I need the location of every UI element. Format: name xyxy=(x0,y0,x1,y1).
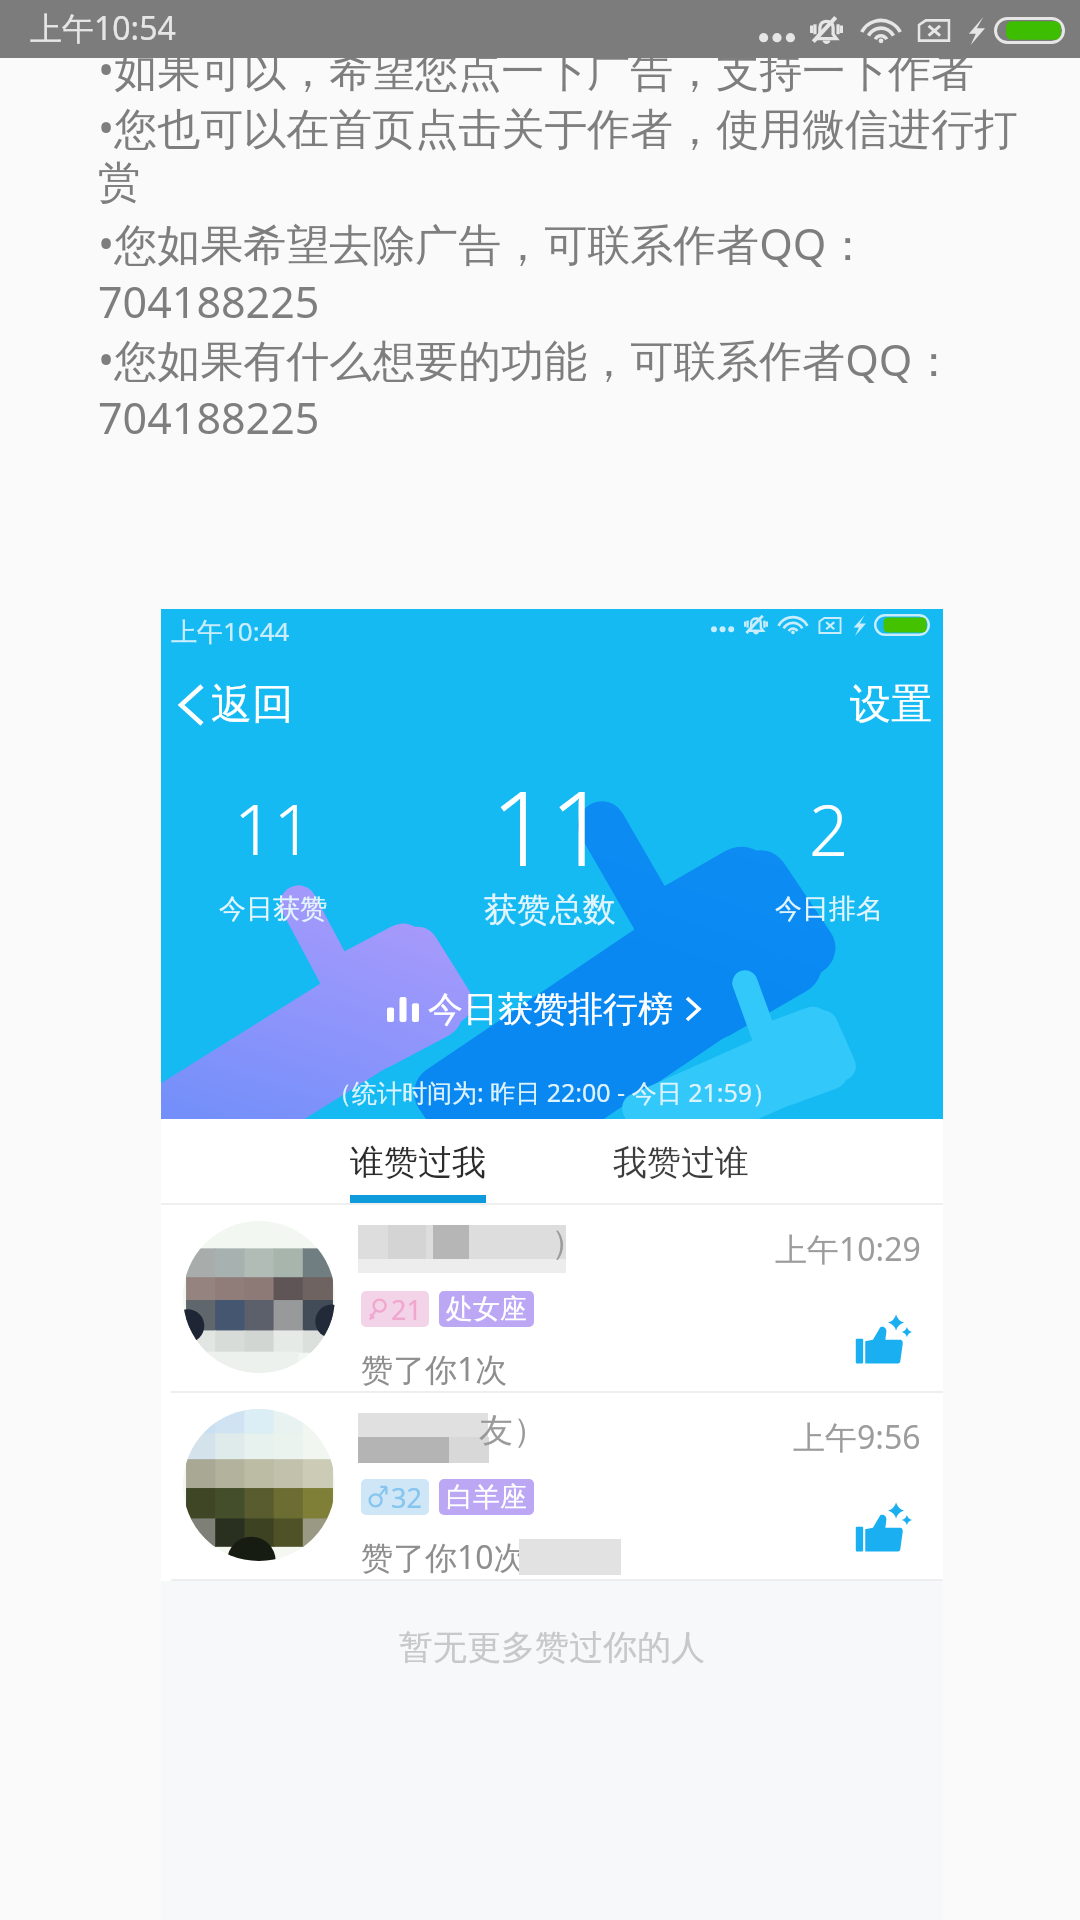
staticText: 上午10:29 xyxy=(775,1227,921,1271)
staticText: 处女座 xyxy=(446,1292,527,1326)
staticText: 2 xyxy=(809,782,849,876)
staticText: 赞了你10次 xyxy=(361,1535,526,1579)
button[interactable]: 今日获赞排行榜 xyxy=(377,979,711,1039)
button[interactable]: Like xyxy=(853,1303,923,1373)
staticText: 32 xyxy=(391,1479,422,1515)
staticText: •如果可以，希望您点一下广告，支持一下作者 xyxy=(98,40,975,99)
staticText: 赞了你1次 xyxy=(361,1347,508,1391)
staticText: 谁赞过我 xyxy=(350,1141,486,1184)
button[interactable]: ） xyxy=(161,1205,943,1393)
staticText: 赏 xyxy=(98,156,141,210)
staticText: 白羊座 xyxy=(446,1480,527,1514)
button[interactable]: 我赞过谁 xyxy=(551,1119,811,1205)
staticText: 上午10:54 xyxy=(30,6,176,50)
staticText: ） xyxy=(551,1221,585,1264)
staticText: （统计时间为: 昨日 22:00 - 今日 21:59） xyxy=(327,1075,778,1109)
staticText: 11 xyxy=(234,781,313,875)
staticText: 设置 xyxy=(850,679,932,731)
button[interactable]: Like xyxy=(853,1491,923,1561)
staticText: 今日排名 xyxy=(775,892,883,926)
staticText: 今日获赞排行榜 xyxy=(428,987,673,1031)
button[interactable]: 谁赞过我 xyxy=(288,1119,548,1205)
staticText: 暂无更多赞过你的人 xyxy=(399,1626,705,1669)
staticText: 友） xyxy=(479,1409,547,1452)
button[interactable]: Back xyxy=(169,671,302,739)
staticText: 我赞过谁 xyxy=(613,1141,749,1184)
button[interactable]: 设置 xyxy=(837,671,943,739)
staticText: 21 xyxy=(391,1291,422,1327)
staticText: 返回 xyxy=(211,679,293,731)
staticText: •您如果有什么想要的功能，可联系作者QQ： xyxy=(98,330,956,389)
staticText: •您也可以在首页点击关于作者，使用微信进行打 xyxy=(98,98,1018,157)
staticText: 704188225 xyxy=(98,388,320,447)
staticText: 今日获赞 xyxy=(219,892,327,926)
staticText: 11 xyxy=(491,756,609,896)
staticText: •您如果希望去除广告，可联系作者QQ： xyxy=(98,214,870,273)
button[interactable]: 友） xyxy=(161,1393,943,1581)
staticText: 704188225 xyxy=(98,272,320,331)
staticText: 获赞总数 xyxy=(484,889,616,931)
staticText: 上午10:44 xyxy=(171,613,290,649)
staticText: 上午9:56 xyxy=(793,1415,921,1459)
